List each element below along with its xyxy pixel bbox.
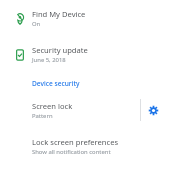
staticText: Screen lock: [32, 101, 73, 111]
staticText: Find My Device: [32, 9, 86, 19]
staticText: Pattern: [32, 112, 53, 120]
button[interactable]: Screen lock: [0, 95, 172, 125]
staticText: Device security: [32, 79, 80, 88]
button[interactable]: Lock screen preferences: [0, 133, 172, 160]
button[interactable]: Security update: [0, 41, 172, 68]
staticText: June 5, 2018: [32, 56, 66, 64]
staticText: Security update: [32, 45, 88, 55]
staticText: Lock screen preferences: [32, 137, 119, 147]
button[interactable]: Find My Device: [0, 5, 172, 32]
staticText: Show all notification content: [32, 148, 111, 156]
staticText: On: [32, 20, 41, 28]
button[interactable]: Screen lock settings: [141, 100, 166, 121]
